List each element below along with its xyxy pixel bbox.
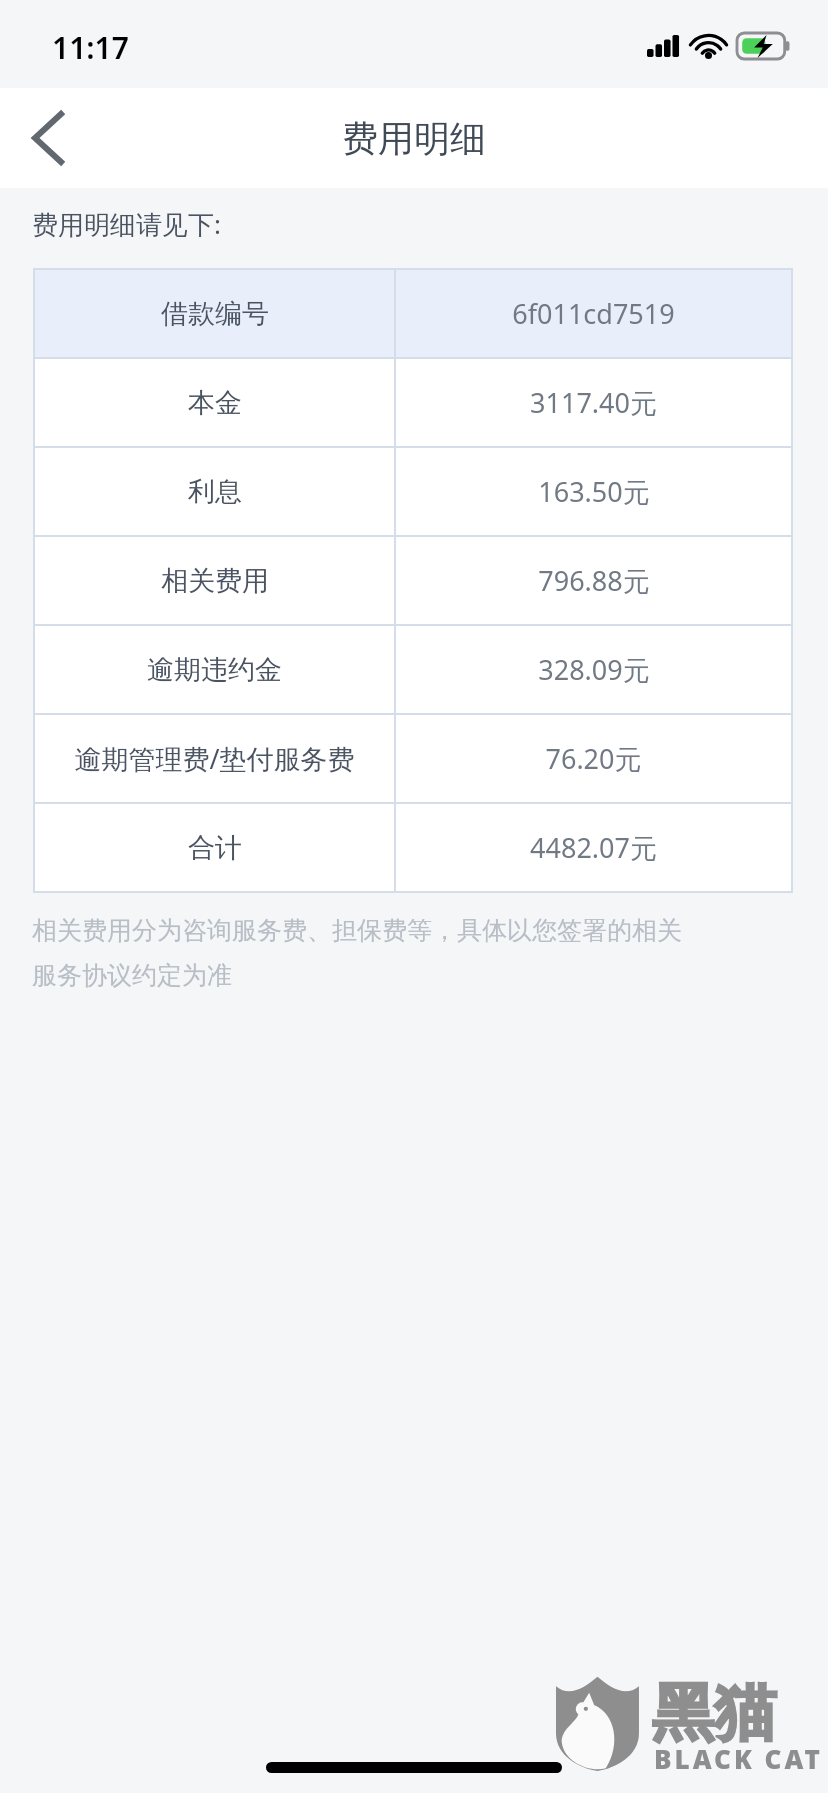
staticText: 黑猫: [652, 1674, 776, 1752]
button[interactable]: Back: [0, 90, 96, 186]
staticText: 本金: [188, 386, 242, 420]
staticText: 3117.40元: [530, 384, 657, 421]
staticText: 逾期管理费/垫付服务费: [74, 740, 355, 777]
staticText: 借款编号: [161, 297, 269, 331]
staticText: 相关费用分为咨询服务费、担保费等，具体以您签署的相关服务协议约定为准: [32, 915, 696, 991]
staticText: 796.88元: [538, 562, 650, 599]
staticText: 逾期违约金: [147, 653, 282, 687]
staticText: 相关费用: [161, 564, 269, 598]
staticText: 费用明细请见下:: [32, 206, 221, 242]
staticText: 328.09元: [538, 651, 650, 688]
staticText: 76.20元: [545, 740, 642, 777]
staticText: 4482.07元: [530, 829, 657, 866]
staticText: 合计: [188, 831, 242, 865]
staticText: 利息: [188, 475, 242, 509]
staticText: 11:17: [52, 27, 129, 68]
staticText: 163.50元: [538, 473, 650, 510]
staticText: 费用明细: [342, 116, 486, 161]
staticText: BLACK CAT: [654, 1741, 823, 1776]
staticText: 6f011cd7519: [512, 295, 675, 332]
